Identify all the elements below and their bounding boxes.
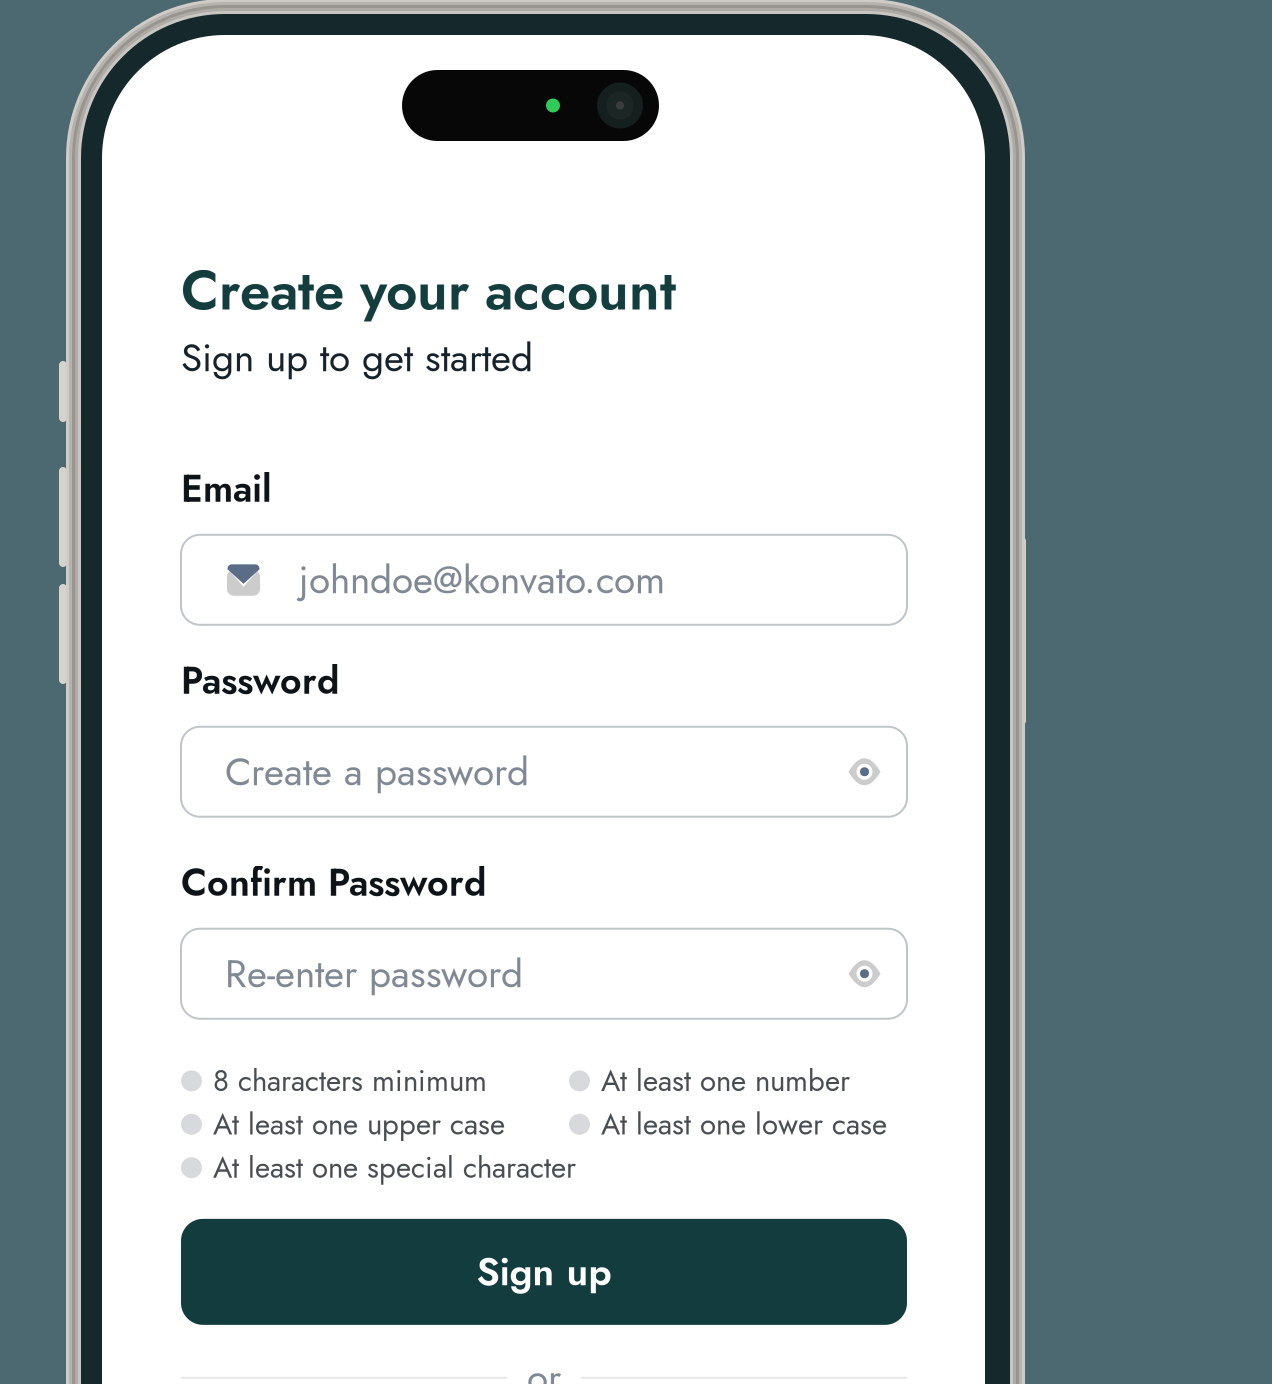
staticText: Sign up: [476, 1244, 611, 1300]
staticText: At least one upper case: [213, 1103, 505, 1145]
staticText: At least one lower case: [601, 1103, 887, 1145]
staticText: johndoe@konvato.com: [299, 552, 665, 608]
staticText: Create a password: [225, 744, 529, 800]
staticText: At least one number: [601, 1060, 850, 1102]
staticText: 8 characters minimum: [213, 1060, 487, 1102]
button[interactable]: Sign up: [181, 1219, 907, 1325]
staticText: Email: [181, 462, 272, 516]
staticText: or: [527, 1350, 561, 1384]
button[interactable]: Re-enter password: [181, 929, 907, 1019]
staticText: Re-enter password: [225, 946, 523, 1002]
staticText: At least one special character: [213, 1146, 576, 1189]
button[interactable]: johndoe@konvato.com: [181, 535, 907, 625]
staticText: Password: [181, 654, 339, 708]
staticText: Confirm Password: [181, 856, 486, 910]
button[interactable]: Create a password: [181, 727, 907, 817]
staticText: Sign up to get started: [181, 330, 533, 386]
staticText: Create your account: [181, 251, 676, 330]
